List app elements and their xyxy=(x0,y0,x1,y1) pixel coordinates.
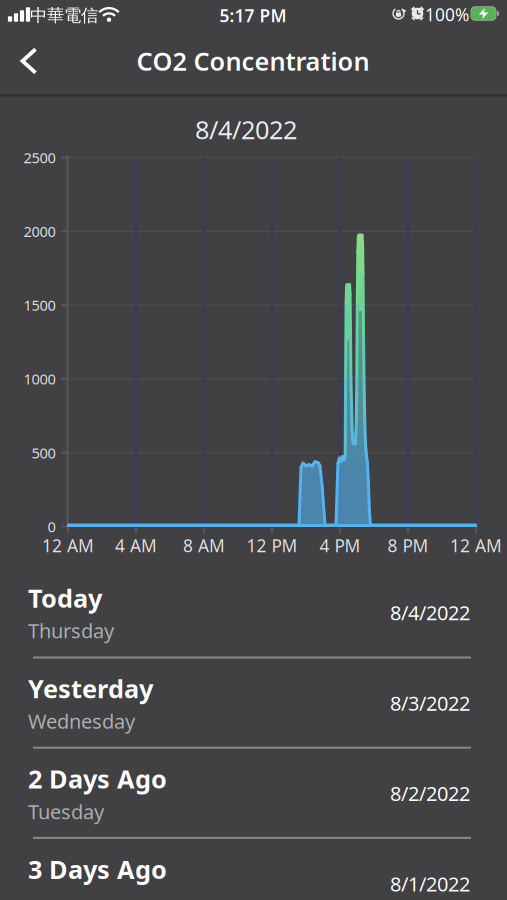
staticText: 2 Days Ago xyxy=(28,762,167,795)
staticText: 5:17 PM xyxy=(219,4,286,27)
staticText: 8/3/2022 xyxy=(390,690,470,716)
button[interactable]: 3 Days Ago xyxy=(0,840,507,900)
staticText: 8/2/2022 xyxy=(390,780,470,807)
staticText: Yesterday xyxy=(28,671,153,705)
staticText: CO2 Concentration xyxy=(136,44,369,78)
staticText: 12 AM xyxy=(450,534,502,557)
staticText: 8/1/2022 xyxy=(390,870,470,897)
staticText: 12 AM xyxy=(42,534,94,557)
staticText: 100% xyxy=(425,3,469,26)
staticText: Tuesday xyxy=(28,798,104,825)
staticText: 2500 xyxy=(23,148,55,167)
staticText: 3 Days Ago xyxy=(28,852,167,886)
button[interactable]: 2 Days Ago xyxy=(0,749,507,837)
staticText: 中華電信 xyxy=(30,5,98,26)
staticText: 1000 xyxy=(23,369,55,389)
button[interactable]: Back xyxy=(9,39,49,83)
staticText: Today xyxy=(28,581,102,615)
button[interactable]: Today xyxy=(0,568,507,656)
staticText: 500 xyxy=(31,443,55,462)
staticText: 12 PM xyxy=(246,534,297,557)
staticText: Wednesday xyxy=(28,708,135,734)
staticText: 8/4/2022 xyxy=(390,599,470,626)
staticText: 0 xyxy=(47,517,55,536)
button[interactable]: Yesterday xyxy=(0,659,507,747)
staticText: 2000 xyxy=(23,222,55,241)
staticText: Thursday xyxy=(28,617,114,644)
staticText: 4 PM xyxy=(319,534,360,557)
staticText: 8 PM xyxy=(387,534,428,557)
staticText: 8 AM xyxy=(183,534,225,557)
staticText: 8/4/2022 xyxy=(195,113,297,146)
staticText: 1500 xyxy=(23,295,55,315)
staticText: 4 AM xyxy=(115,534,157,557)
